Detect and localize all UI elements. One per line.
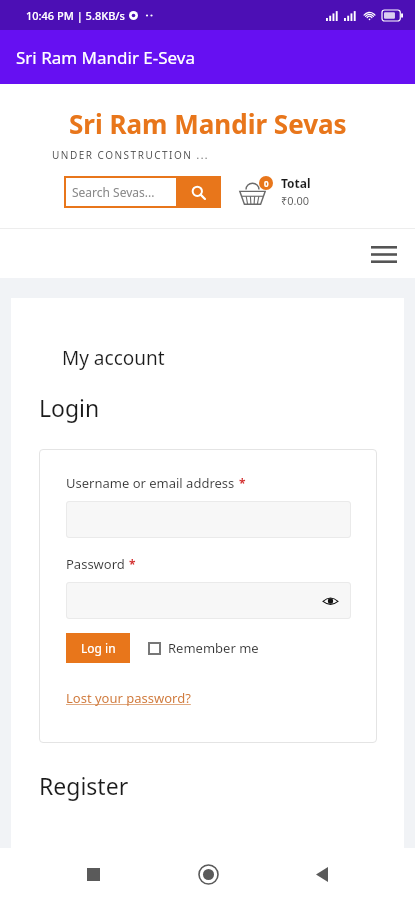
button[interactable]: Back [300, 852, 344, 896]
staticText: 0 [264, 178, 269, 189]
staticText: Total [281, 175, 311, 191]
button[interactable]: Cart total [239, 175, 311, 208]
staticText: * [129, 556, 136, 572]
button[interactable]: Home [186, 852, 230, 896]
staticText: Log in [81, 640, 116, 656]
button[interactable]: Show password [320, 591, 340, 611]
button[interactable]: Lost your password? [66, 689, 191, 707]
staticText: Search Sevas... [72, 184, 155, 200]
staticText: UNDER CONSTRUCTION ... [52, 148, 210, 162]
button[interactable]: Show password [66, 582, 351, 619]
button[interactable]: Log in [66, 633, 130, 663]
button[interactable]: Recents [71, 852, 115, 896]
button[interactable]: Sri Ram Mandir Sevas [69, 106, 347, 141]
staticText: * [239, 475, 246, 491]
button[interactable]: Menu [363, 233, 405, 275]
button[interactable] [66, 501, 351, 538]
staticText: Password [66, 555, 125, 573]
staticText: 10:46 PM | 5.8KB/s [26, 8, 125, 23]
staticText: Login [39, 392, 100, 423]
button[interactable]: Search [176, 176, 221, 208]
staticText: ₹0.00 [281, 193, 310, 208]
staticText: Register [39, 770, 129, 801]
staticText: Username or email address [66, 474, 235, 492]
staticText: Sri Ram Mandir E-Seva [16, 46, 196, 69]
staticText: Remember me [168, 639, 259, 657]
button[interactable]: Search Sevas... [64, 176, 221, 208]
button[interactable]: Remember me [148, 639, 259, 657]
staticText: My account [62, 345, 165, 371]
